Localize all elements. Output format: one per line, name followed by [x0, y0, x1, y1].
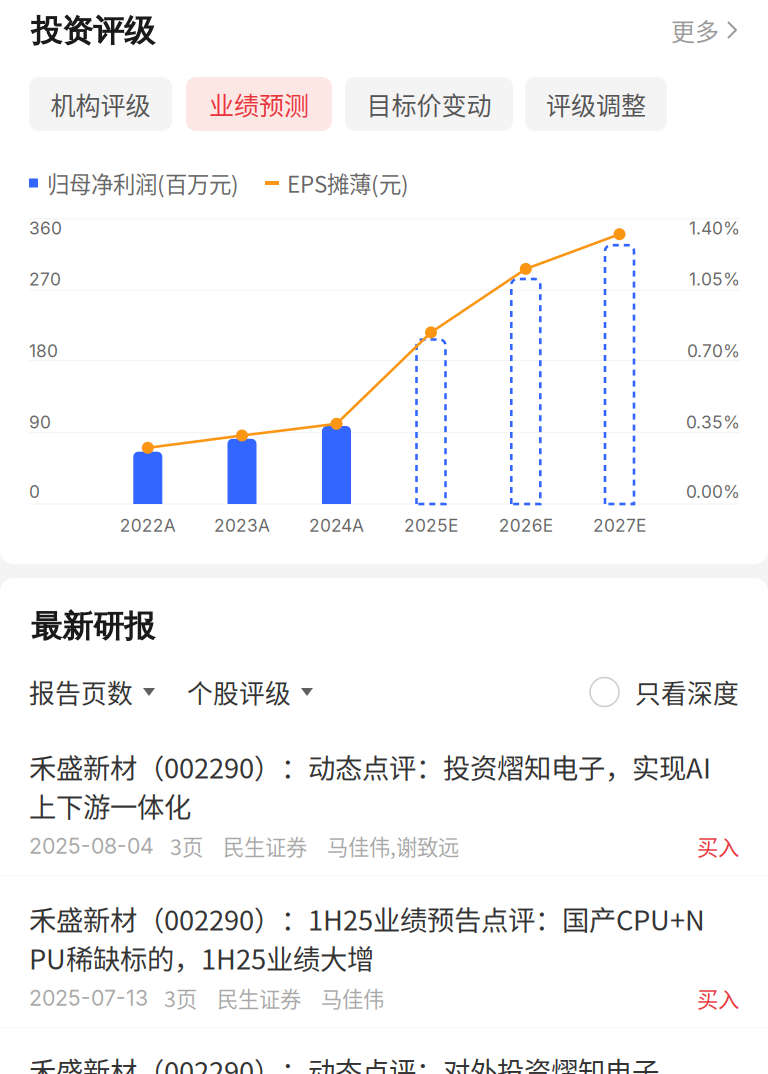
staticText: 评级调整	[546, 86, 646, 122]
staticText: 个股评级	[187, 673, 291, 711]
button[interactable]: 个股评级	[187, 673, 313, 711]
staticText: 最新研报	[31, 607, 155, 646]
staticText: 机构评级	[50, 86, 150, 122]
staticText: 更多	[671, 13, 719, 47]
staticText: 2022A	[120, 515, 176, 536]
staticText: 禾盛新材（002290）：1H25业绩预告点评：国产CPU+N	[29, 899, 705, 938]
staticText: 买入	[697, 831, 739, 861]
staticText: 目标价变动	[366, 86, 491, 122]
staticText: 1.40%	[689, 218, 740, 239]
staticText: 0.70%	[687, 340, 740, 361]
button[interactable]: 机构评级	[29, 77, 172, 131]
staticText: 马佳伟,谢致远	[327, 831, 459, 861]
staticText: 马佳伟	[321, 983, 384, 1013]
button[interactable]: 禾盛新材（002290）：动态点评：对外投资熠知电子	[0, 1028, 768, 1074]
staticText: 360	[29, 218, 62, 239]
staticText: 270	[29, 269, 61, 290]
staticText: 买入	[697, 983, 739, 1013]
staticText: 0	[29, 481, 40, 502]
staticText: 0.35%	[686, 412, 740, 433]
staticText: 3页	[164, 983, 197, 1013]
staticText: 2023A	[214, 515, 270, 536]
staticText: 投资评级	[31, 11, 155, 50]
button[interactable]: 禾盛新材（002290）：1H25业绩预告点评：国产CPU+N	[0, 876, 768, 1028]
staticText: 90	[29, 412, 51, 433]
staticText: 2025-07-13	[29, 985, 148, 1011]
button[interactable]: 业绩预测	[186, 77, 332, 131]
button[interactable]: 只看深度	[590, 673, 739, 711]
staticText: 民生证券	[217, 983, 301, 1013]
button[interactable]: 目标价变动	[345, 77, 513, 131]
staticText: 只看深度	[635, 673, 739, 711]
staticText: EPS摊薄(元)	[287, 167, 409, 199]
button[interactable]: 评级调整	[525, 77, 667, 131]
staticText: 禾盛新材（002290）：动态点评：对外投资熠知电子	[29, 1050, 659, 1074]
staticText: 禾盛新材（002290）：动态点评：投资熠知电子，实现AI	[29, 747, 711, 786]
staticText: 2026E	[499, 515, 553, 536]
staticText: 2027E	[593, 515, 646, 536]
button[interactable]: 更多	[628, 13, 738, 47]
staticText: 3页	[170, 831, 203, 861]
staticText: 2025-08-04	[29, 833, 154, 859]
staticText: 2025E	[404, 515, 458, 536]
staticText: 2024A	[309, 515, 364, 536]
staticText: 业绩预测	[209, 86, 309, 122]
staticText: PU稀缺标的，1H25业绩大增	[29, 938, 374, 977]
staticText: 0.00%	[686, 481, 740, 502]
staticText: 报告页数	[29, 673, 133, 711]
button[interactable]: 报告页数	[29, 673, 155, 711]
staticText: 1.05%	[689, 269, 740, 290]
staticText: 180	[29, 340, 58, 361]
staticText: 归母净利润(百万元)	[47, 167, 239, 199]
staticText: 民生证券	[223, 831, 307, 861]
staticText: 上下游一体化	[29, 786, 191, 825]
button[interactable]: 禾盛新材（002290）：动态点评：投资熠知电子，实现AI	[0, 724, 768, 876]
